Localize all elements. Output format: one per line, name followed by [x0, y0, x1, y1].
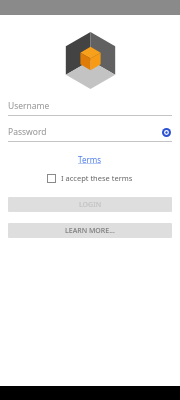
staticText: I accept these terms — [61, 173, 133, 183]
staticText: Username — [8, 100, 172, 112]
button[interactable]: Show password — [161, 127, 172, 138]
button[interactable]: Username — [8, 100, 172, 116]
staticText: Password — [8, 126, 161, 138]
staticText: Terms — [78, 154, 102, 165]
button[interactable]: Password — [8, 126, 172, 142]
button[interactable]: LEARN MORE... — [8, 223, 172, 238]
button[interactable]: Terms — [70, 152, 110, 167]
button[interactable]: I accept these terms — [43, 171, 137, 185]
staticText: LOGIN — [79, 200, 102, 210]
staticText: LEARN MORE... — [65, 226, 115, 236]
